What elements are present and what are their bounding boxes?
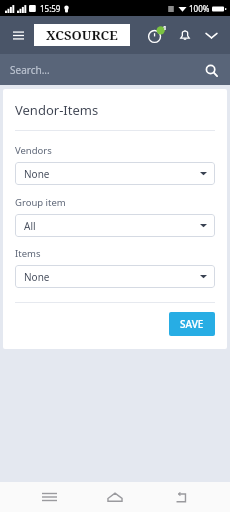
button[interactable]: Recent apps bbox=[32, 482, 66, 512]
button[interactable]: None bbox=[15, 162, 215, 185]
staticText: None bbox=[24, 270, 50, 284]
staticText: Items bbox=[15, 247, 41, 260]
button[interactable]: Notifications bbox=[173, 23, 197, 47]
staticText: 15:59 bbox=[40, 3, 61, 14]
button[interactable]: Open navigation menu bbox=[8, 25, 28, 45]
staticText: XCSOURCE bbox=[46, 26, 118, 44]
button[interactable]: None bbox=[15, 265, 215, 288]
button[interactable]: XCSOURCE bbox=[34, 24, 130, 46]
button[interactable]: Pending tasks bbox=[144, 23, 168, 47]
button[interactable]: SAVE bbox=[169, 312, 215, 336]
staticText: 100% bbox=[189, 3, 210, 14]
staticText: Search... bbox=[10, 63, 50, 77]
button[interactable]: More options bbox=[200, 24, 222, 46]
staticText: Vendor-Items bbox=[15, 101, 99, 119]
other: Search bbox=[203, 62, 219, 78]
staticText: All bbox=[24, 219, 36, 233]
staticText: Group item bbox=[15, 196, 66, 209]
staticText: 1 bbox=[163, 24, 167, 32]
button[interactable]: Back bbox=[164, 482, 198, 512]
button[interactable]: All bbox=[15, 214, 215, 237]
staticText: Vendors bbox=[15, 144, 52, 157]
staticText: None bbox=[24, 167, 50, 181]
staticText: SAVE bbox=[180, 317, 204, 331]
button[interactable]: Home bbox=[98, 482, 132, 512]
button[interactable]: Search... bbox=[0, 54, 230, 85]
